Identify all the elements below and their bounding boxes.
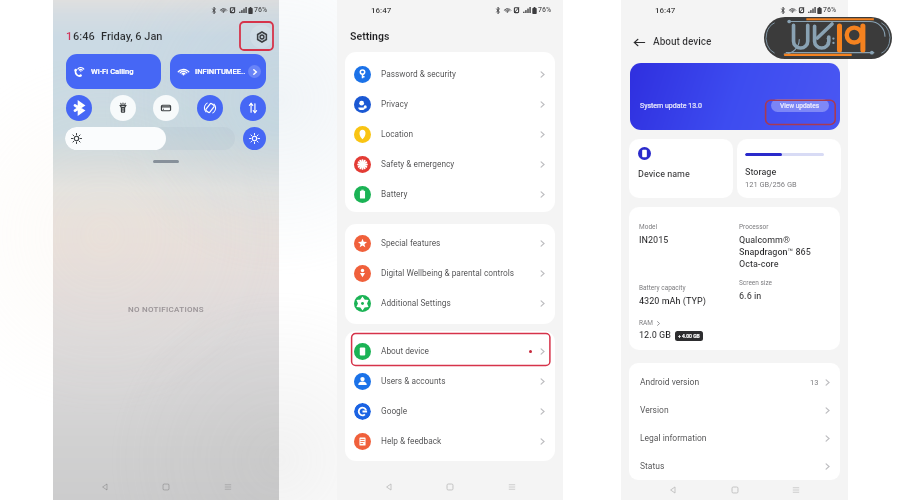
staticText: Model xyxy=(639,223,658,231)
button[interactable]: Toggle xyxy=(66,95,92,121)
button[interactable]: Safety & emergency xyxy=(345,149,555,179)
staticText: Location xyxy=(381,129,414,139)
staticText: 13 xyxy=(810,378,819,387)
staticText: Screen size xyxy=(739,279,773,287)
button[interactable]: INFINITUMEE.. xyxy=(170,54,266,89)
staticText: IN2015 xyxy=(639,235,669,246)
staticText: Special features xyxy=(381,238,441,248)
button[interactable]: Battery xyxy=(345,179,555,209)
staticText: RAM xyxy=(639,319,653,327)
staticText: Version xyxy=(640,405,669,415)
staticText: About device xyxy=(653,36,712,48)
staticText: About device xyxy=(381,346,429,356)
button[interactable]: Toggle xyxy=(110,95,136,121)
button[interactable]: Brightness xyxy=(65,127,235,150)
button[interactable]: Version xyxy=(629,396,840,424)
button[interactable]: Back xyxy=(663,480,683,500)
button[interactable]: Digital Wellbeing & parental controls xyxy=(345,258,555,288)
staticText: Storage xyxy=(745,167,777,178)
staticText: 76% xyxy=(538,6,552,14)
button[interactable]: Auto brightness xyxy=(243,127,266,150)
button[interactable]: Toggle xyxy=(240,95,266,121)
button[interactable]: Home xyxy=(725,480,745,500)
staticText: 6.6 in xyxy=(739,291,762,302)
staticText: Snapdragon™ 865 xyxy=(739,247,811,258)
button[interactable]: Additional Settings xyxy=(345,288,555,318)
staticText: Qualcomm® xyxy=(739,235,790,246)
button[interactable]: Recents xyxy=(786,480,806,500)
staticText: NO NOTIFICATIONS xyxy=(128,305,204,314)
staticText: 12.0 GB xyxy=(639,330,671,341)
button[interactable]: Device name xyxy=(629,139,733,198)
staticText: Legal information xyxy=(640,433,707,443)
staticText: Device name xyxy=(638,169,690,180)
button[interactable]: Home xyxy=(156,477,176,497)
button[interactable]: Back xyxy=(379,477,399,497)
button[interactable]: Google xyxy=(345,396,555,426)
staticText: Android version xyxy=(640,377,700,387)
staticText: Processor xyxy=(739,223,769,231)
button[interactable]: Settings xyxy=(250,25,273,48)
staticText: 16:47 xyxy=(371,6,392,15)
button[interactable]: Toggle xyxy=(153,95,179,121)
staticText: Password & security xyxy=(381,69,456,79)
button[interactable]: Storage xyxy=(737,139,841,198)
staticText: INFINITUMEE.. xyxy=(195,67,246,76)
button[interactable]: Password & security xyxy=(345,59,555,89)
button[interactable]: Back xyxy=(629,32,649,52)
button[interactable]: Wi-Fi Calling xyxy=(66,54,161,89)
staticText: Additional Settings xyxy=(381,298,451,308)
button[interactable]: About device xyxy=(345,336,555,366)
button[interactable]: Location xyxy=(345,119,555,149)
staticText: 76% xyxy=(254,6,268,14)
staticText: Friday, 6 Jan xyxy=(101,30,163,43)
button[interactable]: System update 13.0 xyxy=(630,63,840,130)
button[interactable]: Recents xyxy=(502,477,522,497)
button[interactable]: Recents xyxy=(218,477,238,497)
staticText: Battery xyxy=(381,189,408,199)
staticText: Google xyxy=(381,406,408,416)
button[interactable]: Help & feedback xyxy=(345,426,555,456)
staticText: Users & accounts xyxy=(381,376,446,386)
staticText: System update 13.0 xyxy=(640,102,702,110)
button[interactable]: Back xyxy=(95,477,115,497)
button[interactable]: View updates xyxy=(771,99,829,112)
staticText: 4320 mAh (TYP) xyxy=(639,296,706,307)
staticText: Settings xyxy=(350,30,390,42)
button[interactable]: Toggle xyxy=(197,95,223,121)
staticText: Safety & emergency xyxy=(381,159,455,169)
staticText: Battery capacity xyxy=(639,284,686,292)
button[interactable]: Users & accounts xyxy=(345,366,555,396)
staticText: 1 xyxy=(66,30,73,43)
button[interactable]: Android version xyxy=(629,368,840,396)
staticText: + 4.00 GB xyxy=(678,333,700,339)
staticText: 16:47 xyxy=(655,6,676,15)
staticText: Wi-Fi Calling xyxy=(91,67,134,76)
staticText: Help & feedback xyxy=(381,436,442,446)
button[interactable]: Status xyxy=(629,452,840,480)
button[interactable]: Legal information xyxy=(629,424,840,452)
staticText: 76% xyxy=(823,6,837,14)
staticText: Octa-core xyxy=(739,259,779,270)
staticText: Status xyxy=(640,461,665,471)
staticText: 121 GB/256 GB xyxy=(745,180,797,189)
staticText: View updates xyxy=(780,102,820,110)
staticText: Privacy xyxy=(381,99,408,109)
staticText: 6:46 xyxy=(73,30,95,43)
button[interactable]: Home xyxy=(440,477,460,497)
button[interactable]: Privacy xyxy=(345,89,555,119)
button[interactable]: Special features xyxy=(345,228,555,258)
staticText: Digital Wellbeing & parental controls xyxy=(381,268,515,278)
